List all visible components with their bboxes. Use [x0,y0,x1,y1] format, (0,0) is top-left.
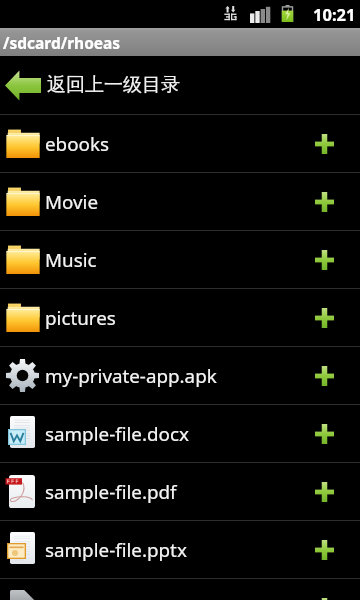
staticText: Movie [45,189,289,215]
button[interactable]: pictures [0,289,360,346]
button[interactable]: 返回上一级目录 [0,56,360,114]
button[interactable]: Add [289,405,360,462]
staticText: sample-file.pptx [45,537,289,563]
button[interactable]: sample-file.docx [0,405,360,462]
button[interactable]: my-private-app.apk [0,347,360,404]
staticText: /sdcard/rhoeas [3,32,121,53]
button[interactable]: Movie [0,173,360,230]
staticText: sample-file.docx [45,421,289,447]
button[interactable]: Add [289,347,360,404]
button[interactable]: Music [0,231,360,288]
staticText: my-private-app.apk [45,363,289,389]
staticText: 10:21 [313,3,356,25]
staticText: Music [45,247,289,273]
button[interactable]: sample-file.pdf [0,463,360,520]
button[interactable]: Add [289,463,360,520]
button[interactable]: Add [289,289,360,346]
button[interactable]: Add [289,579,360,600]
button[interactable]: Add [289,115,360,172]
button[interactable]: ebooks [0,115,360,172]
button[interactable]: Add [289,521,360,578]
button[interactable]: Add [289,173,360,230]
button[interactable]: Add [289,231,360,288]
button[interactable]: sample-file.xlsx [0,579,360,600]
staticText: pictures [45,305,289,331]
button[interactable]: sample-file.pptx [0,521,360,578]
staticText: ebooks [45,131,289,157]
staticText: 返回上一级目录 [47,73,180,97]
staticText: sample-file.pdf [45,479,289,505]
